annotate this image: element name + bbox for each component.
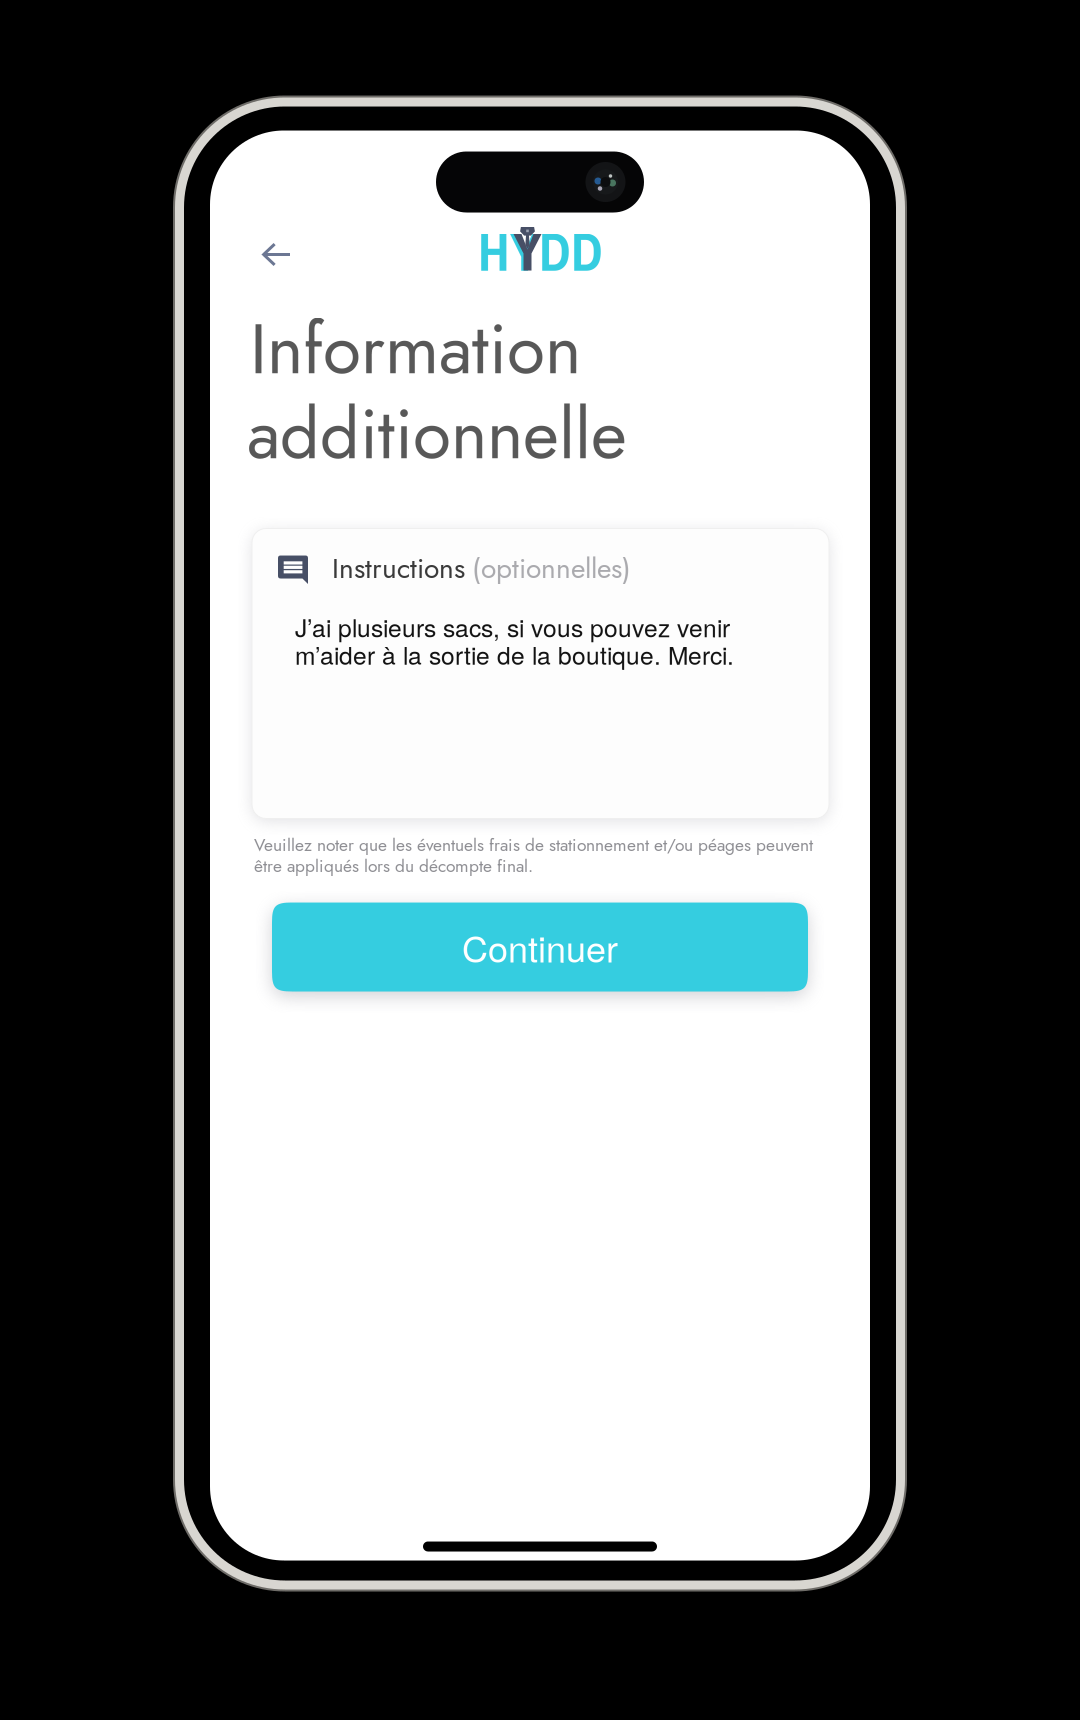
staticText: Information xyxy=(250,299,581,399)
button[interactable]: Retour xyxy=(240,220,314,284)
button[interactable]: Continuer xyxy=(272,902,808,991)
staticText: (optionnelles) xyxy=(472,548,631,588)
staticText: additionnelle xyxy=(247,384,627,484)
staticText: J’ai plusieurs sacs, si vous pouvez veni… xyxy=(295,609,730,644)
staticText: être appliqués lors du décompte final. xyxy=(254,853,533,878)
staticText: HYDD xyxy=(478,215,603,287)
staticText: Instructions xyxy=(332,548,465,588)
staticText: Veuillez noter que les éventuels frais d… xyxy=(254,832,813,857)
staticText: Continuer xyxy=(462,921,618,973)
staticText: m’aider à la sortie de la boutique. Merc… xyxy=(295,637,734,672)
